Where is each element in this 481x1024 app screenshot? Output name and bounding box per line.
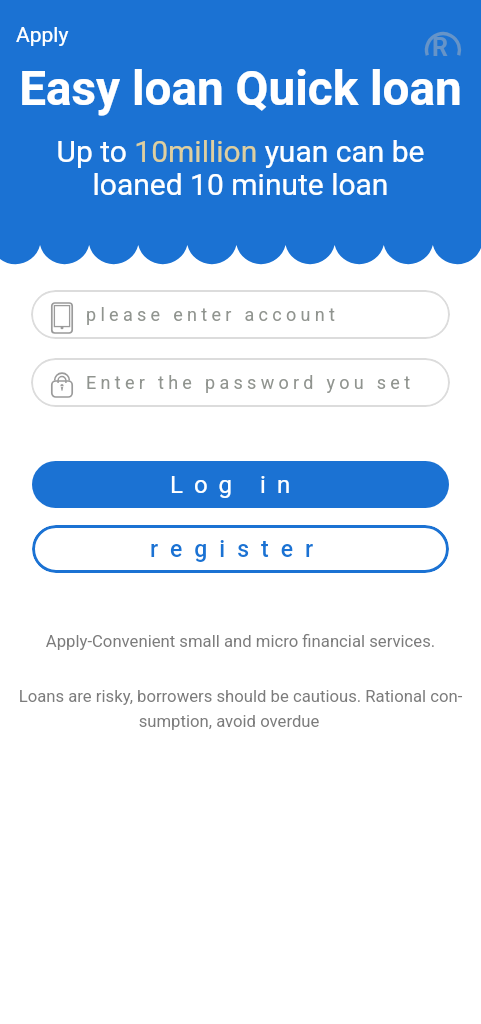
other: Registered trademark — [424, 30, 464, 70]
staticText: Up to 10million yuan can be loaned 10 mi… — [52, 134, 429, 202]
staticText: register — [150, 536, 326, 563]
button[interactable]: register — [32, 525, 449, 573]
button[interactable]: please enter account — [31, 290, 450, 339]
button[interactable]: Enter the password you set — [31, 358, 450, 407]
button[interactable]: Log in — [32, 461, 449, 508]
staticText: Apply-Convenient small and micro financi… — [0, 632, 481, 652]
staticText: Log in — [170, 471, 302, 499]
staticText: R — [432, 33, 449, 62]
staticText: please enter account — [86, 304, 340, 325]
staticText: Easy loan Quick loan — [0, 61, 481, 117]
staticText: Enter the password you set — [86, 372, 415, 393]
staticText: Apply — [16, 23, 69, 48]
staticText: Loans are risky, borrowers should be cau… — [0, 687, 481, 707]
staticText: sumption, avoid overdue — [0, 712, 458, 732]
